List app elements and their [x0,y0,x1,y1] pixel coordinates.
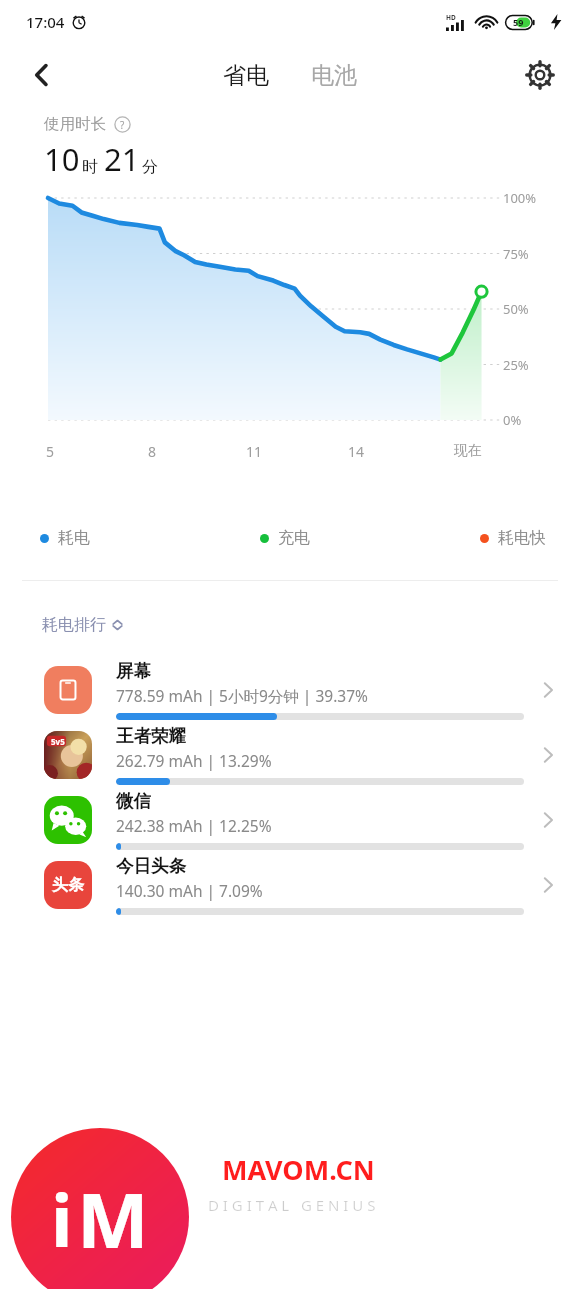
staticText: HD [446,13,456,22]
button[interactable]: 耗电 [40,524,90,552]
button[interactable]: 返回 [16,49,68,101]
staticText: 分 [142,157,158,177]
staticText: 时 [82,157,98,177]
button[interactable]: 说明 [114,116,131,133]
other: 详情 [538,745,558,765]
staticText: 14 [348,442,365,461]
staticText: 50% [503,300,529,318]
staticText: 使用时长 [44,114,106,134]
other: 详情 [538,810,558,830]
staticText: 头条 [52,875,84,895]
staticText: 11 [246,442,263,461]
staticText: 75% [503,245,529,263]
button[interactable]: 头条 [0,852,580,917]
staticText: 微信 [116,790,151,812]
staticText: 17:04 [26,12,65,32]
staticText: 100% [503,189,537,207]
staticText: 8 [148,442,157,461]
other: 详情 [538,875,558,895]
staticText: 0% [503,411,522,429]
staticText: 5v5 [51,736,65,747]
button[interactable]: 电池 [305,55,363,96]
staticText: 242.38 mAh | 12.25% [116,815,272,836]
staticText: 5 [46,442,55,461]
button[interactable]: 微信 [0,787,580,852]
staticText: 王者荣耀 [116,725,186,747]
staticText: 耗电排行 [42,615,106,635]
button[interactable]: 充电 [260,524,310,552]
staticText: i [51,1170,73,1268]
button[interactable]: 省电 [217,55,275,96]
other: 详情 [538,680,558,700]
staticText: 耗电快 [498,528,546,548]
button[interactable]: 5v5 [0,722,580,787]
staticText: 耗电 [58,528,90,548]
staticText: ? [120,118,125,132]
staticText: 10 [44,138,80,180]
staticText: 充电 [278,528,310,548]
staticText: 今日头条 [116,855,186,877]
staticText: 21 [104,138,140,180]
staticText: 省电 [223,61,269,90]
staticText: D I G I T A L G E N I U S [208,1195,376,1215]
staticText: MAVOM.CN [222,1151,375,1188]
button[interactable]: 耗电排行 [40,611,125,639]
button[interactable]: 设置 [514,49,566,101]
staticText: 140.30 mAh | 7.09% [116,880,263,901]
staticText: 262.79 mAh | 13.29% [116,750,272,771]
button[interactable]: 耗电快 [480,524,546,552]
staticText: 现在 [454,442,482,460]
staticText: 25% [503,356,529,374]
staticText: 778.59 mAh | 5小时9分钟 | 39.37% [116,685,368,706]
staticText: 电池 [311,61,357,90]
staticText: 屏幕 [116,660,151,682]
staticText: 59 [513,16,524,28]
staticText: M [77,1167,149,1271]
button[interactable]: 屏幕 [0,657,580,722]
